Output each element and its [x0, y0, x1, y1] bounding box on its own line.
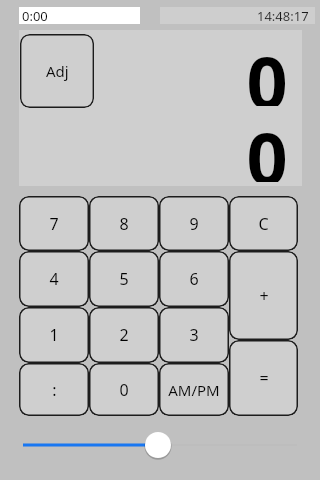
button[interactable]: 7: [19, 196, 89, 251]
button[interactable]: 4: [19, 251, 89, 307]
staticText: 3: [189, 324, 199, 346]
button[interactable]: 9: [159, 196, 229, 251]
staticText: 9: [189, 213, 199, 235]
staticText: 6: [189, 268, 199, 290]
staticText: C: [258, 213, 269, 235]
staticText: 5: [119, 268, 129, 290]
staticText: 0: [246, 108, 288, 182]
staticText: 0:00: [22, 7, 48, 24]
staticText: 4: [49, 268, 59, 290]
button[interactable]: 2: [89, 307, 159, 363]
button[interactable]: 0:00: [19, 7, 140, 24]
button[interactable]: :: [19, 363, 89, 416]
staticText: AM/PM: [168, 380, 220, 400]
staticText: 0: [119, 379, 129, 401]
staticText: +: [259, 285, 269, 307]
button[interactable]: Adj: [20, 34, 94, 108]
button[interactable]: 5: [89, 251, 159, 307]
staticText: Adj: [46, 61, 69, 81]
staticText: 2: [119, 324, 129, 346]
button[interactable]: Volume slider: [0, 424, 320, 466]
staticText: 14:48:17: [257, 7, 309, 24]
staticText: =: [259, 367, 269, 389]
button[interactable]: 1: [19, 307, 89, 363]
staticText: :: [52, 379, 57, 401]
staticText: 1: [49, 324, 59, 346]
button[interactable]: 0: [89, 363, 159, 416]
staticText: 0: [246, 32, 288, 106]
button[interactable]: 3: [159, 307, 229, 363]
button[interactable]: C: [229, 196, 298, 251]
staticText: 8: [119, 213, 129, 235]
button[interactable]: +: [229, 251, 298, 340]
button[interactable]: 6: [159, 251, 229, 307]
button[interactable]: 8: [89, 196, 159, 251]
staticText: 7: [49, 213, 59, 235]
button[interactable]: AM/PM: [159, 363, 229, 416]
button[interactable]: =: [229, 340, 298, 416]
